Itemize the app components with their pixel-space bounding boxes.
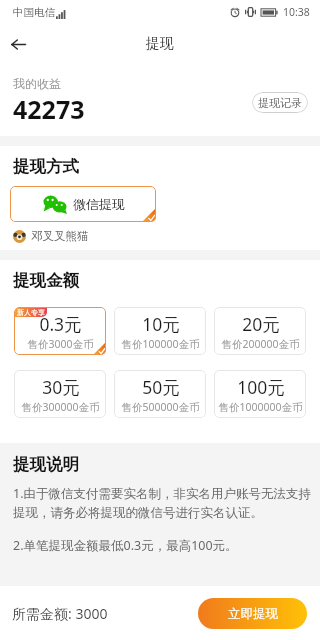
staticText: 售价1000000金币 (218, 400, 303, 414)
staticText: 售价300000金币 (21, 400, 100, 414)
staticText: 中国电信 (13, 6, 55, 19)
button[interactable]: Back (0, 26, 36, 62)
staticText: 立即提现 (228, 606, 278, 622)
staticText: 提现方式 (13, 156, 79, 177)
button[interactable]: 微信提现 (10, 186, 156, 222)
staticText: 0.3元 (39, 312, 82, 336)
staticText: 提现记录 (258, 96, 302, 110)
button[interactable]: 立即提现 (198, 598, 307, 629)
button[interactable]: 0.3元 (14, 307, 106, 355)
staticText: 20元 (242, 312, 280, 336)
button[interactable]: 10元 (114, 307, 206, 355)
staticText: 售价100000金币 (121, 337, 200, 351)
staticText: 所需金额: 3000 (12, 604, 108, 623)
staticText: 新人专享 (17, 308, 45, 317)
staticText: 2.单笔提现金额最低0.3元，最高100元。 (13, 537, 238, 554)
staticText: 提现 (146, 35, 174, 53)
staticText: 售价3000金币 (27, 337, 94, 351)
button[interactable]: 50元 (114, 370, 206, 418)
button[interactable]: 提现记录 (252, 92, 308, 113)
staticText: 100元 (237, 375, 285, 399)
staticText: 提现说明 (13, 454, 79, 475)
staticText: 50元 (142, 375, 180, 399)
button[interactable]: 100元 (214, 370, 306, 418)
staticText: 售价500000金币 (121, 400, 200, 414)
button[interactable]: 20元 (214, 307, 306, 355)
staticText: 10:38 (283, 5, 310, 19)
staticText: 提现金额 (13, 270, 79, 291)
staticText: 邓叉叉熊猫 (31, 229, 89, 243)
button[interactable]: 邓叉叉熊猫 (13, 229, 89, 243)
staticText: 微信提现 (73, 196, 125, 212)
button[interactable]: 30元 (14, 370, 106, 418)
staticText: 售价200000金币 (221, 337, 300, 351)
staticText: 30元 (42, 375, 80, 399)
staticText: 1.由于微信支付需要实名制，非实名用户账号无法支持提现，请务必将提现的微信号进行… (13, 485, 311, 521)
staticText: 我的收益 (13, 76, 61, 91)
staticText: 10元 (142, 312, 180, 336)
staticText: 42273 (13, 92, 85, 126)
